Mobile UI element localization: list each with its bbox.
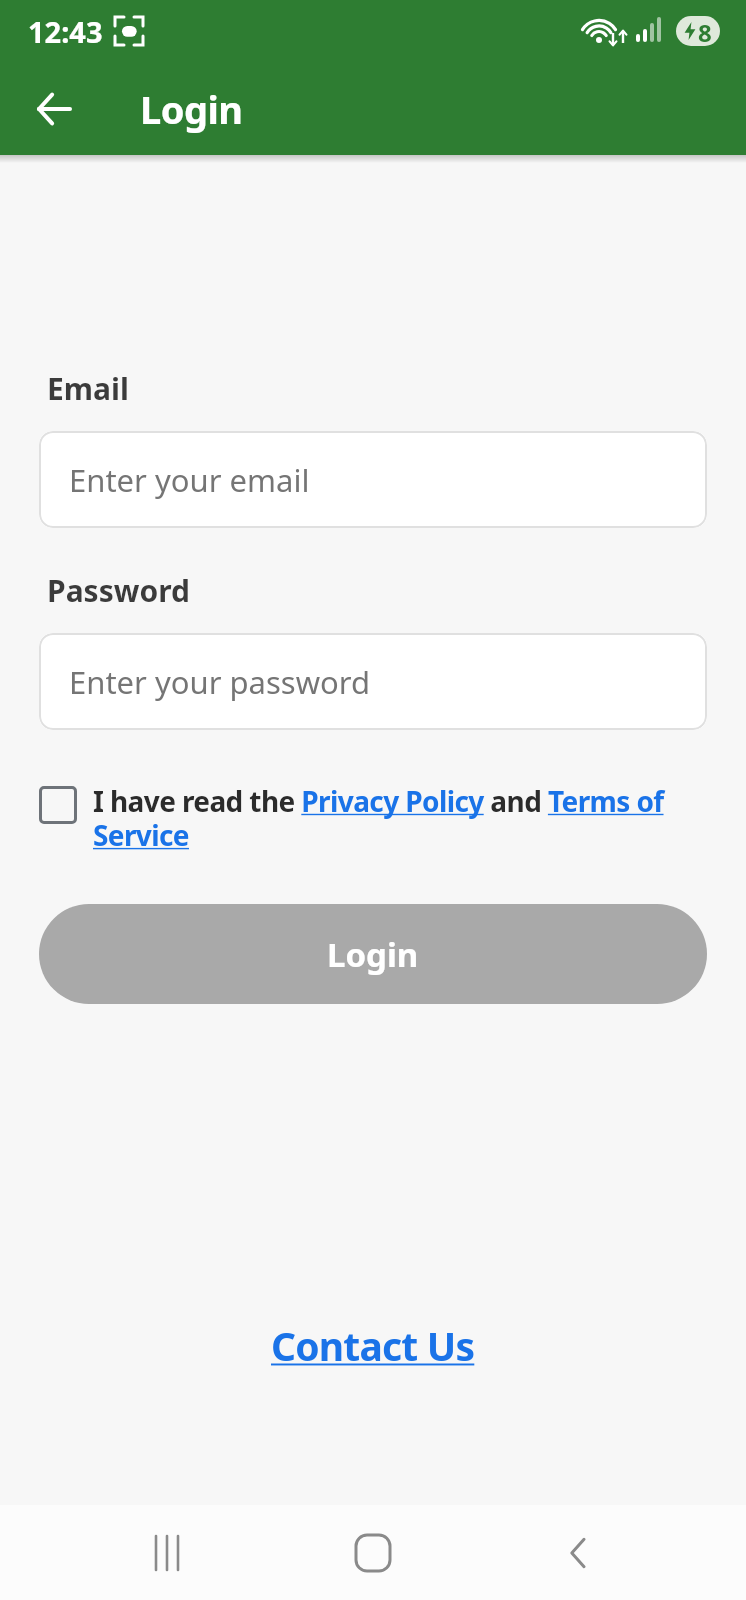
staticText: 12:43: [28, 12, 103, 51]
button[interactable]: Contact Us: [271, 1319, 475, 1372]
staticText: Password: [47, 570, 190, 611]
staticText: Email: [47, 368, 129, 409]
staticText: I have read the Privacy Policy and Terms…: [93, 782, 664, 854]
staticText: Login: [140, 83, 243, 135]
button[interactable]: [549, 1523, 609, 1583]
button[interactable]: [137, 1523, 197, 1583]
button[interactable]: I have read the Privacy Policy and Terms…: [39, 782, 707, 854]
staticText: Enter your password: [69, 661, 371, 703]
button[interactable]: Enter your email: [39, 431, 707, 528]
button[interactable]: Login: [39, 904, 707, 1004]
staticText: Enter your email: [69, 459, 310, 501]
button[interactable]: [20, 74, 90, 144]
staticText: 8: [698, 16, 712, 46]
staticText: Login: [327, 932, 419, 977]
staticText: Contact Us: [271, 1319, 475, 1372]
button[interactable]: [343, 1523, 403, 1583]
button[interactable]: Enter your password: [39, 633, 707, 730]
